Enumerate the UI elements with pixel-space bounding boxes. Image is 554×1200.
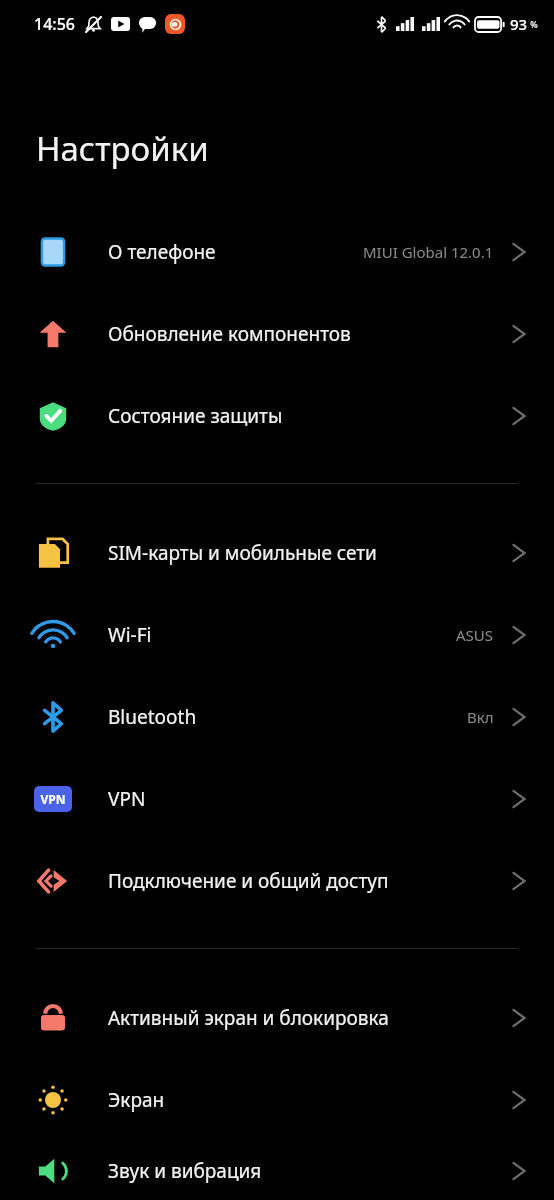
button[interactable]: Звук и вибрация (0, 1141, 554, 1200)
staticText: Экран (108, 1087, 165, 1113)
staticText: Настройки (36, 126, 209, 171)
staticText: Активный экран и блокировка (108, 1005, 389, 1031)
staticText: Bluetooth (108, 704, 197, 730)
staticText: % (528, 18, 538, 30)
staticText: Подключение и общий доступ (108, 868, 389, 894)
button[interactable]: Экран (0, 1059, 554, 1141)
staticText: VPN (40, 791, 66, 807)
staticText: Вкл (467, 707, 494, 727)
staticText: SIM-карты и мобильные сети (108, 540, 377, 566)
button[interactable]: О телефоне (0, 211, 554, 293)
staticText: Обновление компонентов (108, 321, 351, 347)
staticText: 14:56 (34, 13, 75, 35)
button[interactable]: Активный экран и блокировка (0, 977, 554, 1059)
button[interactable]: Обновление компонентов (0, 293, 554, 375)
staticText: О телефоне (108, 239, 216, 265)
staticText: 93 (510, 14, 528, 34)
staticText: Звук и вибрация (108, 1158, 262, 1184)
staticText: Wi-Fi (108, 622, 152, 648)
staticText: ASUS (456, 625, 494, 645)
staticText: MIUI Global 12.0.1 (363, 242, 494, 262)
button[interactable]: Wi-Fi (0, 594, 554, 676)
staticText: VPN (108, 786, 146, 812)
button[interactable]: Bluetooth (0, 676, 554, 758)
button[interactable]: Подключение и общий доступ (0, 840, 554, 922)
button[interactable]: Состояние защиты (0, 375, 554, 457)
button[interactable]: SIM-карты и мобильные сети (0, 512, 554, 594)
button[interactable]: VPN (0, 758, 554, 840)
staticText: Состояние защиты (108, 403, 283, 429)
